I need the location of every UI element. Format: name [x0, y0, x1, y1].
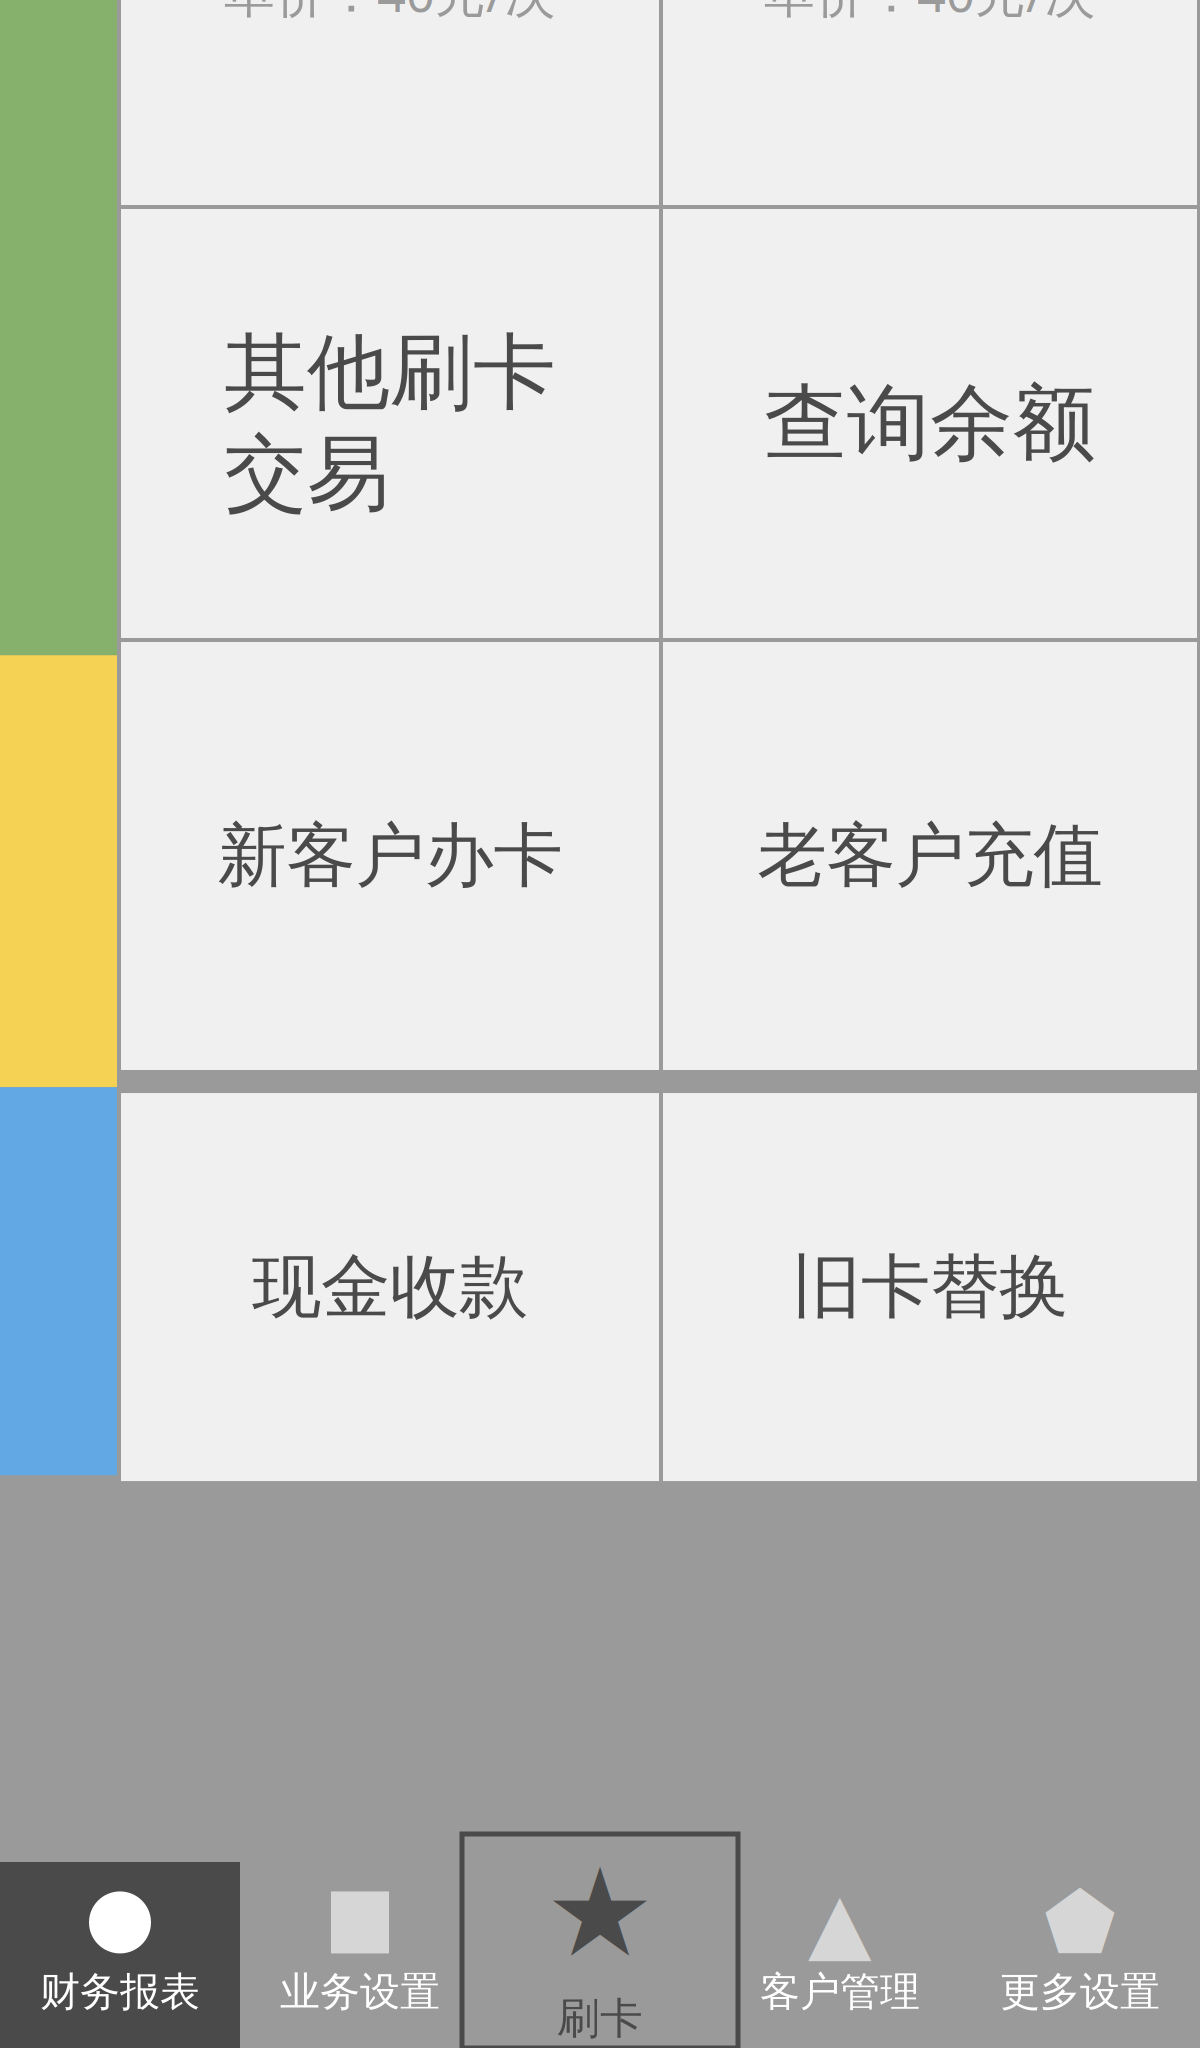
staticText: 新客户办卡 [217, 813, 562, 899]
staticText: 客户管理 [760, 1967, 920, 2016]
staticText: 单价：40元/次 [224, 0, 556, 26]
button[interactable]: ★ [462, 1834, 738, 2048]
staticText: 老客户充值 [757, 813, 1102, 899]
button[interactable]: 洗大车 [663, 0, 1197, 205]
staticText: 更多设置 [1000, 1967, 1160, 2016]
button[interactable]: 旧卡替换 [663, 1093, 1197, 1481]
staticText: 查询余额 [764, 373, 1096, 474]
staticText: 财务报表 [40, 1967, 200, 2016]
button[interactable]: 洗小车 [121, 0, 659, 205]
staticText: ▲ [808, 1875, 872, 1969]
button[interactable]: 老客户充值 [663, 642, 1197, 1070]
button[interactable]: ▲ [720, 1862, 960, 2048]
staticText: ★ [545, 1843, 655, 1982]
staticText: ⬟ [1044, 1875, 1116, 1969]
staticText: 刷卡 [557, 1992, 643, 2045]
staticText: 旧卡替换 [792, 1244, 1068, 1330]
button[interactable]: 查询余额 [663, 209, 1197, 638]
button[interactable]: 业务设置 [240, 1862, 480, 2048]
staticText: 业务设置 [280, 1967, 440, 2016]
button[interactable]: ⬟ [960, 1862, 1200, 2048]
button[interactable]: 新客户办卡 [121, 642, 659, 1070]
button[interactable]: 现金收款 [121, 1093, 659, 1481]
button[interactable]: 财务报表 [0, 1862, 240, 2048]
staticText: 其他刷卡 交易 [224, 322, 556, 525]
button[interactable] [480, 1862, 720, 2048]
staticText: 现金收款 [252, 1244, 528, 1330]
staticText: 单价：40元/次 [764, 0, 1096, 26]
button[interactable]: 其他刷卡 交易 [121, 209, 659, 638]
